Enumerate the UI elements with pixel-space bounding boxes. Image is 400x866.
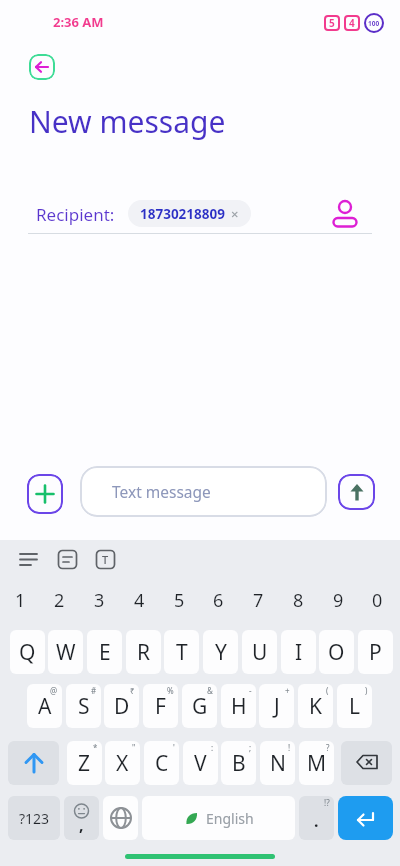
- button[interactable]: [338, 474, 375, 510]
- staticText: +: [285, 685, 290, 696]
- staticText: !?: [324, 797, 330, 808]
- staticText: N: [270, 749, 286, 778]
- staticText: ;: [249, 742, 252, 753]
- button[interactable]: 5: [164, 588, 194, 612]
- staticText: 8: [293, 588, 304, 612]
- button[interactable]: Z: [67, 741, 102, 785]
- staticText: K: [309, 692, 322, 721]
- button[interactable]: 1: [5, 588, 35, 612]
- staticText: 9: [333, 588, 344, 612]
- staticText: Q: [19, 638, 36, 667]
- button[interactable]: [8, 741, 59, 785]
- button[interactable]: A: [27, 684, 62, 728]
- staticText: 2:36 AM: [53, 13, 104, 31]
- button[interactable]: I: [281, 630, 316, 674]
- staticText: Text message: [112, 481, 211, 502]
- staticText: U: [252, 638, 268, 667]
- button[interactable]: N: [260, 741, 295, 785]
- staticText: R: [137, 638, 151, 667]
- button[interactable]: X: [105, 741, 140, 785]
- button[interactable]: M: [299, 741, 334, 785]
- staticText: Z: [78, 749, 91, 778]
- staticText: 3: [94, 588, 105, 612]
- button[interactable]: Text message: [80, 466, 327, 517]
- button[interactable]: [332, 198, 358, 228]
- staticText: 4: [349, 16, 355, 30]
- staticText: O: [328, 638, 345, 667]
- button[interactable]: [341, 741, 392, 785]
- button[interactable]: 9: [323, 588, 353, 612]
- button[interactable]: [338, 796, 393, 840]
- button[interactable]: 7: [243, 588, 273, 612]
- button[interactable]: English: [142, 796, 295, 840]
- staticText: P: [369, 638, 382, 667]
- staticText: J: [274, 692, 280, 721]
- button[interactable]: [29, 54, 55, 80]
- button[interactable]: ?123: [8, 796, 60, 840]
- button[interactable]: Q: [10, 630, 45, 674]
- staticText: !: [288, 742, 291, 753]
- staticText: C: [155, 749, 169, 778]
- button[interactable]: [103, 796, 138, 840]
- staticText: E: [99, 638, 111, 667]
- staticText: ': [173, 742, 175, 753]
- button[interactable]: F: [143, 684, 178, 728]
- staticText: ): [365, 685, 368, 696]
- button[interactable]: L: [337, 684, 372, 728]
- staticText: A: [38, 692, 52, 721]
- button[interactable]: [57, 549, 78, 570]
- button[interactable]: R: [126, 630, 161, 674]
- staticText: &: [207, 685, 213, 696]
- staticText: F: [155, 692, 166, 721]
- staticText: ?: [326, 742, 330, 753]
- staticText: 7: [253, 588, 264, 612]
- button[interactable]: [18, 549, 39, 570]
- button[interactable]: ,: [64, 796, 99, 840]
- staticText: M: [307, 749, 327, 778]
- button[interactable]: O: [319, 630, 354, 674]
- button[interactable]: C: [144, 741, 179, 785]
- button[interactable]: U: [242, 630, 277, 674]
- staticText: 100: [368, 19, 380, 28]
- staticText: D: [114, 692, 130, 721]
- button[interactable]: 18730218809: [128, 200, 251, 227]
- button[interactable]: 0: [362, 588, 392, 612]
- button[interactable]: T: [164, 630, 199, 674]
- button[interactable]: V: [183, 741, 218, 785]
- staticText: 0: [372, 588, 383, 612]
- button[interactable]: P: [358, 630, 393, 674]
- staticText: 18730218809: [140, 205, 225, 223]
- button[interactable]: 8: [283, 588, 313, 612]
- staticText: 2: [54, 588, 65, 612]
- staticText: ": [132, 742, 136, 753]
- staticText: ×: [231, 205, 239, 223]
- button[interactable]: J: [259, 684, 294, 728]
- button[interactable]: K: [298, 684, 333, 728]
- staticText: I: [295, 638, 303, 667]
- button[interactable]: T: [95, 549, 116, 570]
- staticText: S: [78, 692, 90, 721]
- button[interactable]: W: [48, 630, 83, 674]
- staticText: 5: [174, 588, 185, 612]
- button[interactable]: B: [221, 741, 256, 785]
- staticText: V: [194, 749, 207, 778]
- staticText: New message: [29, 101, 226, 142]
- button[interactable]: H: [221, 684, 256, 728]
- button[interactable]: 3: [84, 588, 114, 612]
- button[interactable]: G: [182, 684, 217, 728]
- button[interactable]: Y: [203, 630, 238, 674]
- staticText: ?123: [19, 809, 50, 828]
- staticText: English: [206, 809, 254, 828]
- button[interactable]: [27, 474, 63, 514]
- button[interactable]: !?: [299, 796, 334, 840]
- button[interactable]: D: [104, 684, 139, 728]
- button[interactable]: E: [87, 630, 122, 674]
- button[interactable]: 4: [124, 588, 154, 612]
- button[interactable]: 6: [203, 588, 233, 612]
- staticText: Y: [215, 638, 227, 667]
- staticText: @: [50, 685, 58, 696]
- button[interactable]: S: [66, 684, 101, 728]
- button[interactable]: 2: [44, 588, 74, 612]
- staticText: L: [349, 692, 361, 721]
- staticText: 6: [213, 588, 224, 612]
